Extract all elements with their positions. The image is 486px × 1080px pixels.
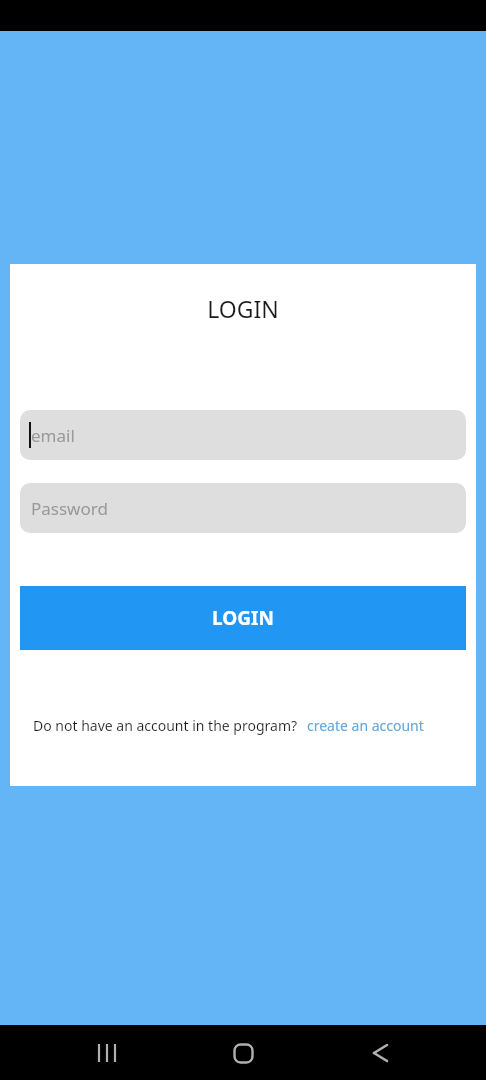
button[interactable]: Recent apps [83, 1029, 131, 1077]
button[interactable]: email [20, 410, 466, 460]
staticText: email [31, 424, 75, 447]
button[interactable]: Password [20, 483, 466, 533]
button[interactable]: Back [355, 1029, 403, 1077]
button[interactable]: LOGIN [20, 586, 466, 650]
staticText: create an account [307, 716, 424, 735]
staticText: LOGIN [207, 293, 279, 324]
button[interactable]: create an account [307, 716, 424, 735]
staticText: Password [31, 497, 108, 520]
button[interactable]: Home [219, 1029, 267, 1077]
staticText: LOGIN [212, 605, 274, 631]
staticText: Do not have an account in the program? [33, 716, 298, 735]
